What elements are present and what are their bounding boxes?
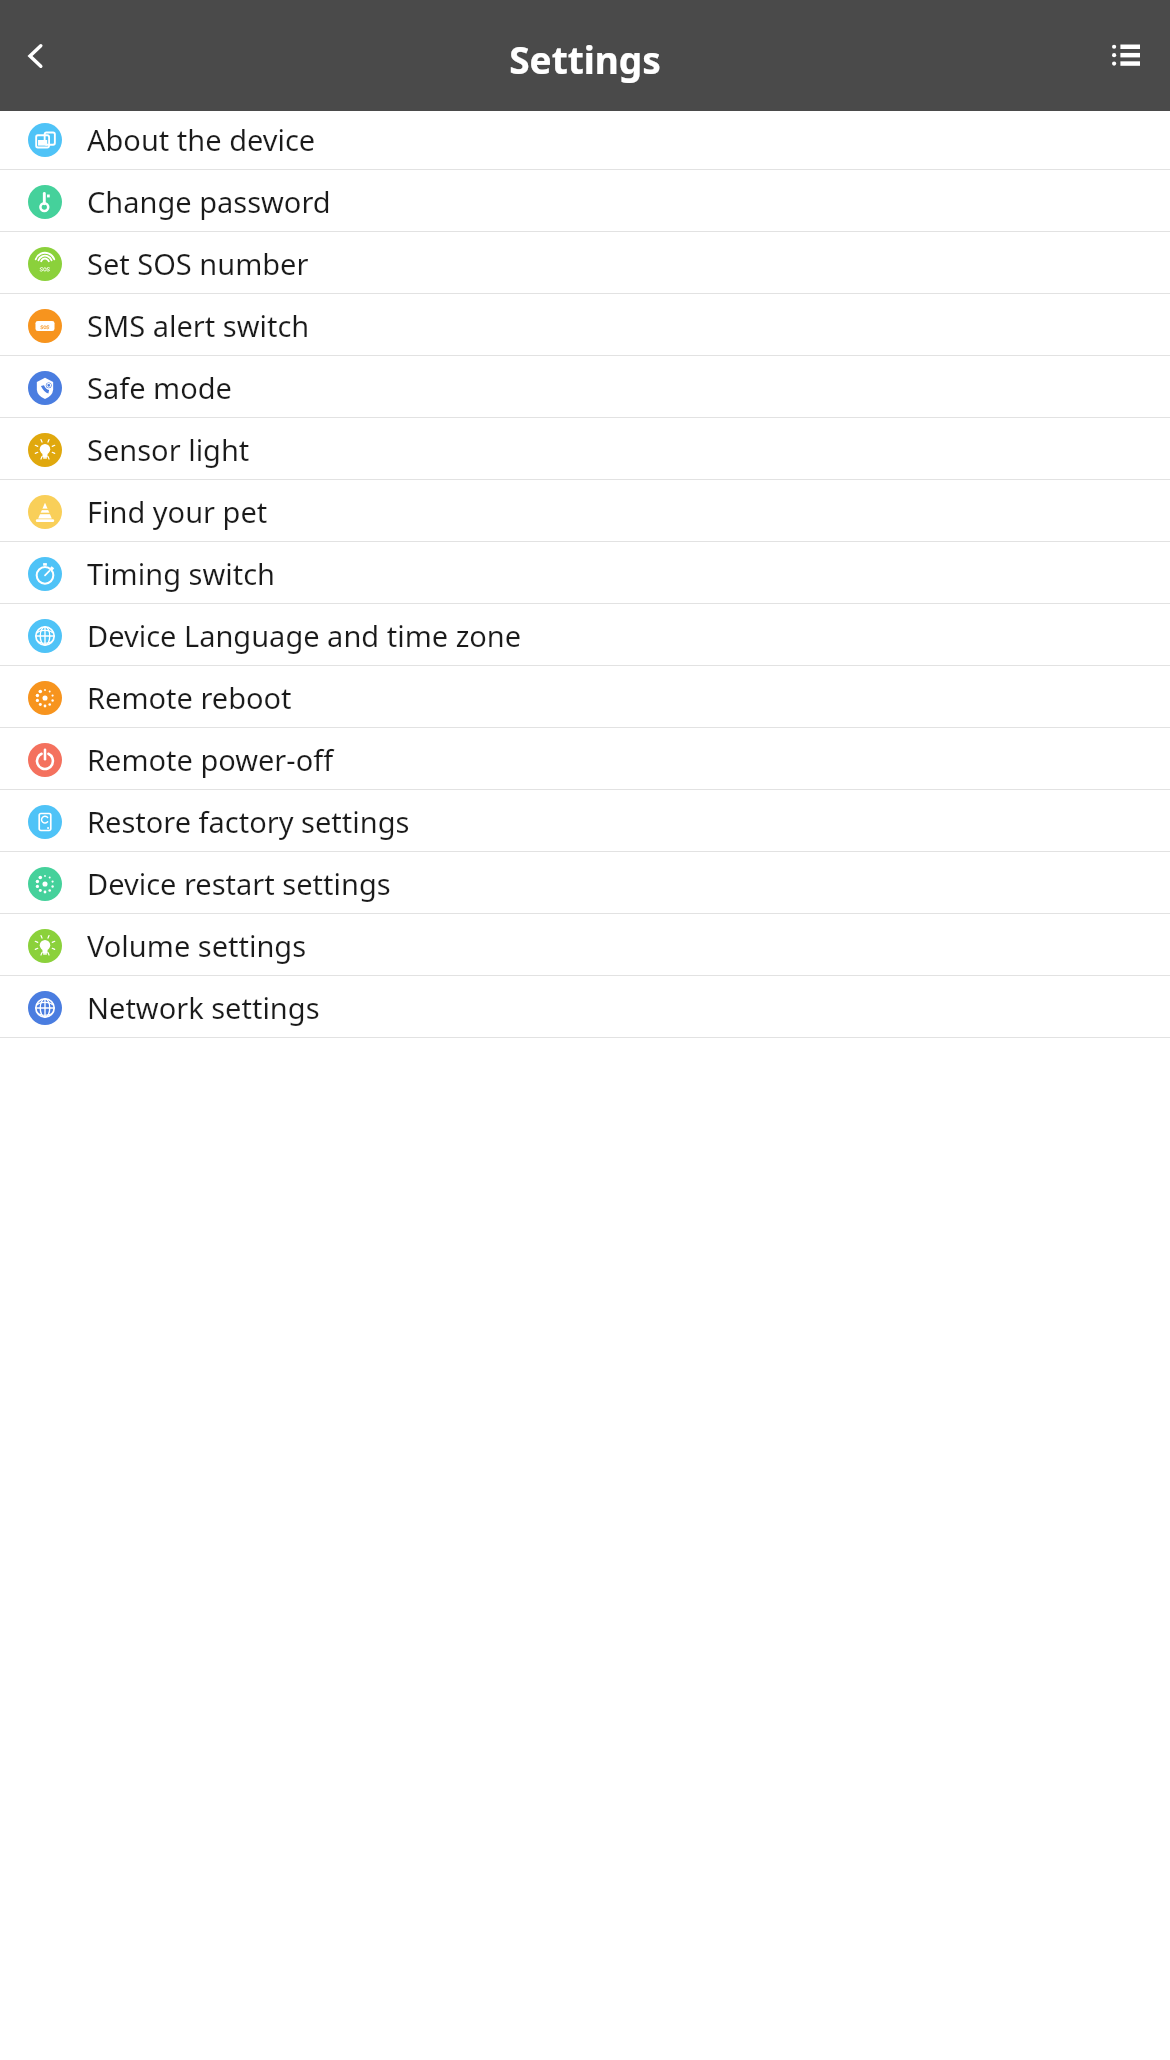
button[interactable]: About the device — [0, 111, 1170, 170]
staticText: Find your pet — [87, 492, 268, 531]
button[interactable]: SMS alert switch — [0, 294, 1170, 356]
staticText: Remote power-off — [87, 740, 334, 779]
staticText: Remote reboot — [87, 678, 292, 717]
staticText: Network settings — [87, 988, 320, 1027]
staticText: Volume settings — [87, 926, 307, 965]
button[interactable]: Device Language and time zone — [0, 604, 1170, 666]
button[interactable]: Restore factory settings — [0, 790, 1170, 852]
staticText: Change password — [87, 182, 331, 221]
button[interactable]: Menu — [1102, 32, 1150, 80]
staticText: Set SOS number — [87, 244, 309, 283]
staticText: Safe mode — [87, 368, 232, 407]
button[interactable]: Find your pet — [0, 480, 1170, 542]
staticText: Device restart settings — [87, 864, 391, 903]
button[interactable]: Change password — [0, 170, 1170, 232]
button[interactable]: Volume settings — [0, 914, 1170, 976]
staticText: SMS alert switch — [87, 306, 310, 345]
staticText: Device Language and time zone — [87, 616, 522, 655]
staticText: Sensor light — [87, 430, 250, 469]
staticText: Timing switch — [87, 554, 275, 593]
button[interactable]: Set SOS number — [0, 232, 1170, 294]
staticText: About the device — [87, 120, 316, 159]
button[interactable]: Device restart settings — [0, 852, 1170, 914]
button[interactable]: Timing switch — [0, 542, 1170, 604]
button[interactable]: Remote power-off — [0, 728, 1170, 790]
button[interactable]: Network settings — [0, 976, 1170, 1038]
button[interactable]: Safe mode — [0, 356, 1170, 418]
staticText: Settings — [509, 34, 661, 84]
button[interactable]: Back — [14, 34, 58, 78]
button[interactable]: Sensor light — [0, 418, 1170, 480]
staticText: Restore factory settings — [87, 802, 410, 841]
button[interactable]: Remote reboot — [0, 666, 1170, 728]
